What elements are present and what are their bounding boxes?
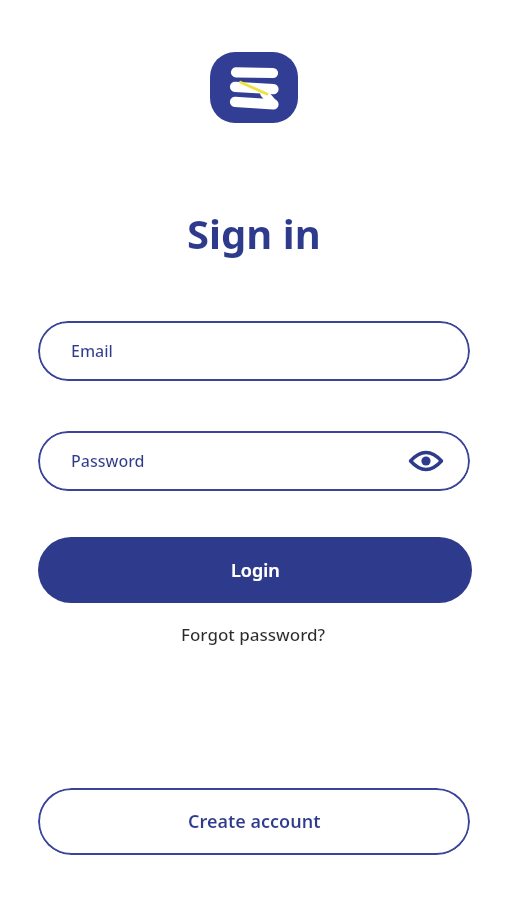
button[interactable]: Create account xyxy=(38,788,470,855)
button[interactable]: Login xyxy=(38,537,472,603)
staticText: Forgot password? xyxy=(181,623,326,646)
button[interactable] xyxy=(409,449,443,473)
staticText: Login xyxy=(231,558,280,583)
button[interactable]: Password xyxy=(38,431,470,491)
button[interactable]: Forgot password? xyxy=(0,616,507,652)
staticText: Create account xyxy=(188,809,321,834)
button[interactable]: Email xyxy=(38,321,470,381)
staticText: Sign in xyxy=(187,206,321,258)
staticText: Password xyxy=(71,450,145,472)
staticText: Email xyxy=(71,340,113,362)
